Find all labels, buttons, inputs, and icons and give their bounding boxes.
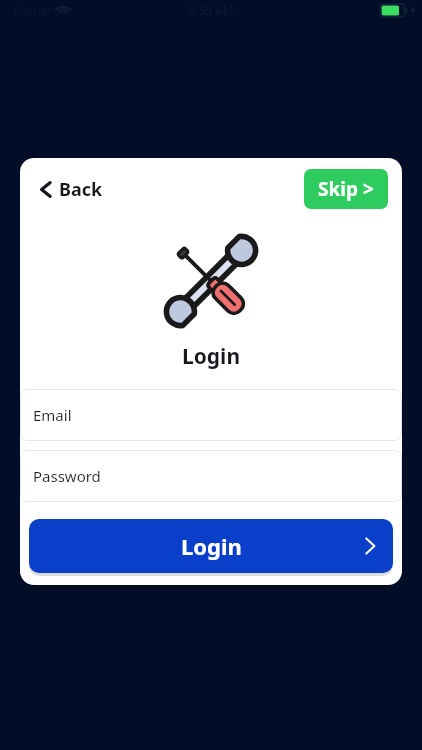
staticText: Back (59, 177, 103, 202)
button[interactable]: Skip > (304, 169, 388, 209)
staticText: Login (20, 342, 402, 371)
staticText: Skip > (318, 176, 374, 202)
button[interactable]: Password (20, 450, 402, 502)
staticText: Email (33, 405, 72, 425)
staticText: Login (181, 531, 242, 561)
staticText: Password (33, 466, 101, 486)
staticText: 3:59 AM (188, 2, 234, 18)
button[interactable]: Login (29, 519, 393, 573)
button[interactable]: Email (20, 389, 402, 441)
button[interactable]: Back (34, 173, 107, 206)
